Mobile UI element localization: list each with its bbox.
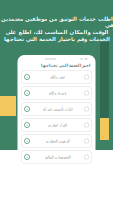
staticText: إقرار عقاري — [47, 123, 66, 127]
staticText: الوقت والمكان المناسب لك، اطلع على — [5, 29, 108, 35]
staticText: فسخ وكالة — [48, 91, 66, 95]
button[interactable]: التعويضات المالية — [21, 150, 91, 163]
staticText: إثبات تأسيس شركة — [42, 107, 72, 111]
button[interactable]: إثبات تأسيس شركة — [21, 102, 91, 115]
button[interactable]: الرهون العقارية — [21, 134, 91, 147]
staticText: الرهون العقارية — [45, 139, 69, 143]
staticText: اختر الخدمة التي تحتاجها — [40, 63, 89, 67]
button[interactable]: عقد وكالة — [21, 70, 91, 83]
staticText: الخدمات وقم باختيار الخدمة التي تحتاجها — [3, 36, 109, 42]
button[interactable]: فسخ وكالة — [21, 86, 91, 99]
button[interactable]: إقرار عقاري — [21, 118, 91, 131]
staticText: التعويضات المالية — [44, 155, 70, 159]
staticText: عقد وكالة — [49, 75, 64, 79]
staticText: اطلب خدمات التوثيق من موظفين معتمدين في — [0, 16, 112, 28]
